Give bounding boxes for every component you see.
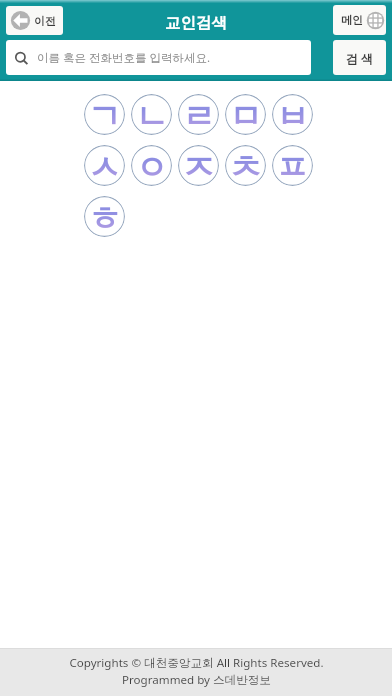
staticText: ㅇ [135,147,168,186]
staticText: ㅅ [88,147,121,186]
staticText: ㅊ [229,147,262,186]
staticText: ㅂ [276,96,309,135]
staticText: ㅎ [88,198,121,237]
staticText: 이름 혹은 전화번호를 입력하세요. [37,50,211,66]
button[interactable]: 이름 혹은 전화번호 검색 입력 [6,40,311,75]
staticText: 메인 [341,13,363,27]
button[interactable]: ㅍ [272,145,313,186]
staticText: ㅍ [276,147,309,186]
button[interactable]: ㄹ [178,94,219,135]
button[interactable]: ㅊ [225,145,266,186]
button[interactable]: ㅂ [272,94,313,135]
button[interactable]: ㅅ [84,145,125,186]
button[interactable]: 검 색 [333,40,386,75]
staticText: ㅁ [229,96,262,135]
staticText: 이전 [34,14,56,28]
button[interactable]: 메인 [333,5,386,35]
button[interactable]: ㄴ [131,94,172,135]
staticText: Programmed by 스데반정보 [122,672,271,688]
button[interactable]: ㅈ [178,145,219,186]
staticText: ㅈ [182,147,215,186]
staticText: ㄹ [182,96,215,135]
button[interactable]: ㅎ [84,196,125,237]
button[interactable]: ㄱ [84,94,125,135]
staticText: ㄱ [88,96,121,135]
button[interactable]: ㅇ [131,145,172,186]
button[interactable]: 이전 (Back) [6,6,63,35]
staticText: 교인검색 [165,13,227,33]
staticText: ㄴ [135,96,168,135]
staticText: Copyrights © 대천중앙교회 All Rights Reserved. [69,655,324,671]
button[interactable]: ㅁ [225,94,266,135]
staticText: 검 색 [346,50,374,66]
